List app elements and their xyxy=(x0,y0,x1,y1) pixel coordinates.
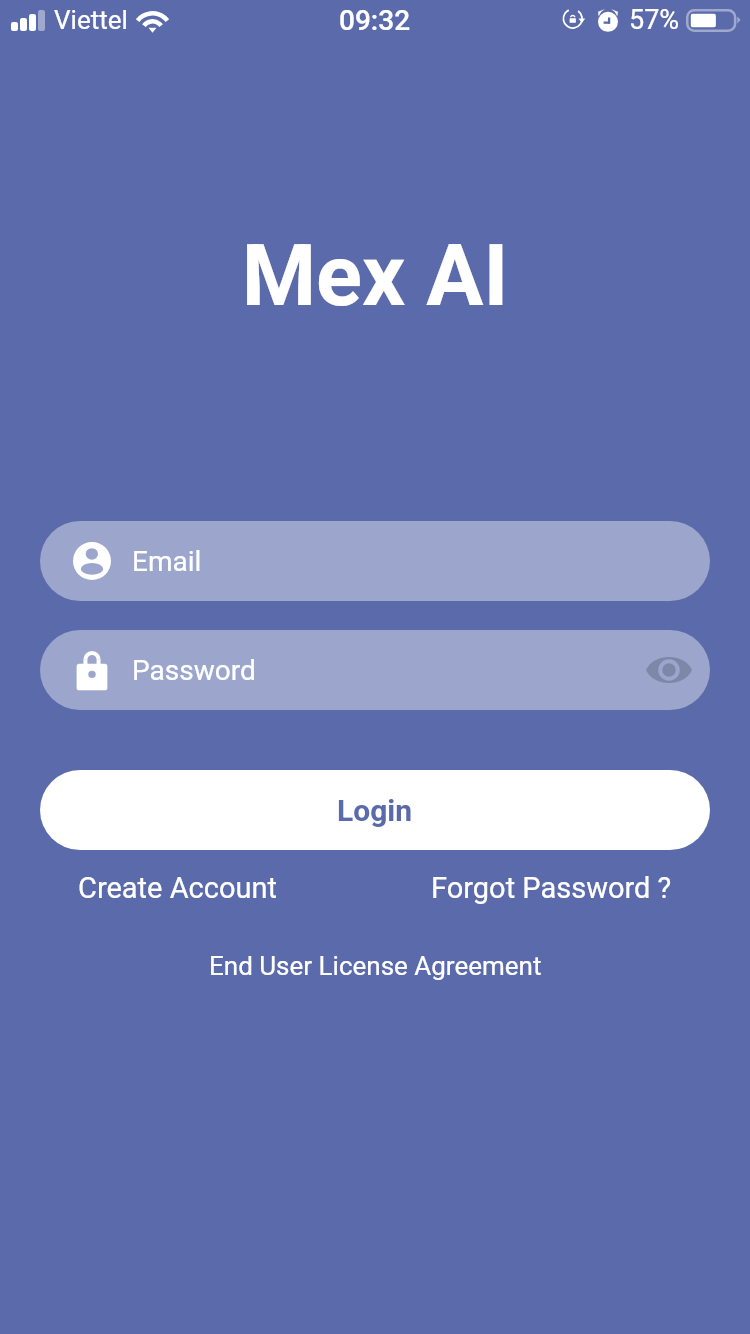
staticText: Viettel xyxy=(54,5,128,35)
button[interactable]: Forgot Password ? xyxy=(423,865,680,911)
staticText: Password xyxy=(132,654,256,687)
staticText: Email xyxy=(132,545,202,578)
button[interactable]: Password xyxy=(40,630,710,710)
staticText: Create Account xyxy=(78,871,277,905)
button[interactable]: Create Account xyxy=(70,865,285,911)
button[interactable]: Show password xyxy=(643,644,695,696)
staticText: Mex AI xyxy=(0,226,750,326)
button[interactable]: Email xyxy=(40,521,710,601)
staticText: 57% xyxy=(629,4,680,36)
button[interactable]: End User License Agreement xyxy=(199,945,552,987)
staticText: Login xyxy=(337,793,413,828)
staticText: End User License Agreement xyxy=(209,951,542,981)
button[interactable]: Login xyxy=(40,770,710,850)
staticText: Forgot Password ? xyxy=(431,871,672,905)
staticText: 09:32 xyxy=(339,4,411,37)
